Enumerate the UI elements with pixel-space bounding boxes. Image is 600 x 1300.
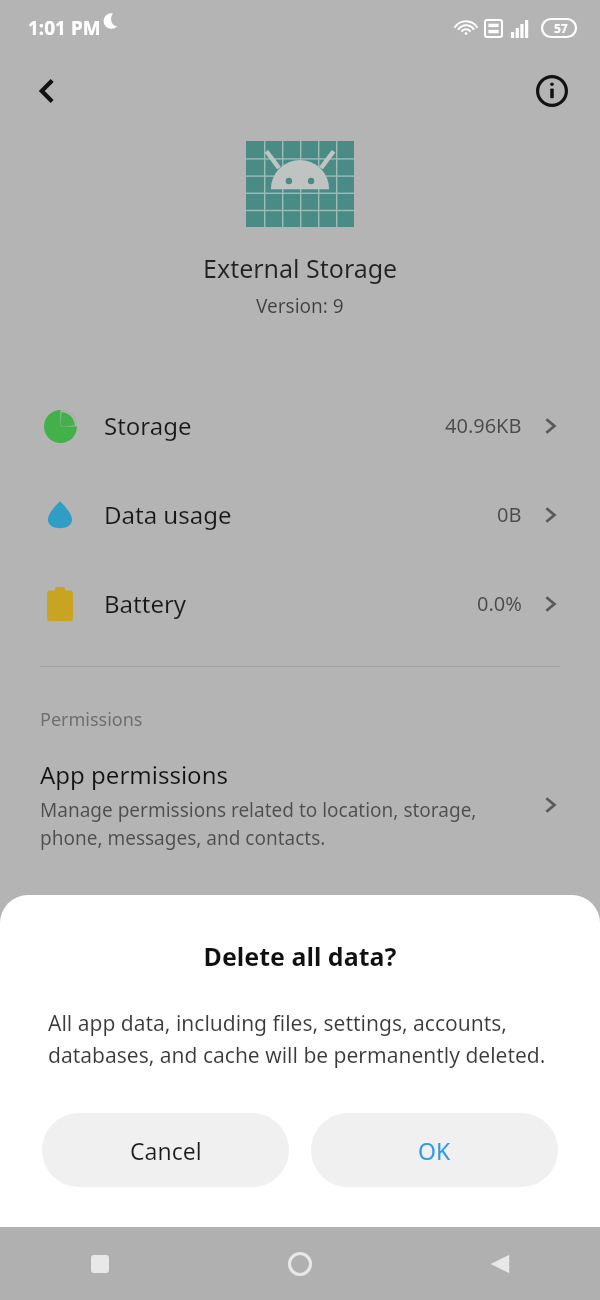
staticText: External Storage xyxy=(203,251,398,285)
staticText: 57 xyxy=(554,20,568,36)
staticText: Battery xyxy=(104,587,477,620)
button[interactable]: Battery xyxy=(0,559,600,648)
staticText: Data usage xyxy=(104,498,497,531)
staticText: All app data, including files, settings,… xyxy=(48,1009,552,1069)
button[interactable]: Cancel xyxy=(42,1113,289,1187)
button[interactable]: App permissions xyxy=(40,758,560,851)
button[interactable]: Data usage xyxy=(0,470,600,559)
staticText: 0.0% xyxy=(477,590,522,617)
button[interactable]: Back xyxy=(472,1236,528,1292)
button[interactable]: Home xyxy=(272,1236,328,1292)
staticText: 40.96KB xyxy=(445,412,522,439)
staticText: OK xyxy=(418,1135,451,1166)
button[interactable]: Back xyxy=(22,65,74,117)
staticText: 1:01 PM xyxy=(28,15,101,41)
button[interactable]: App info xyxy=(526,65,578,117)
staticText: Permissions xyxy=(40,707,143,732)
staticText: App permissions xyxy=(40,758,228,791)
staticText: Cancel xyxy=(130,1135,202,1166)
button[interactable]: OK xyxy=(311,1113,558,1187)
button[interactable]: Recent apps xyxy=(72,1236,128,1292)
staticText: Manage permissions related to location, … xyxy=(40,797,524,851)
staticText: Version: 9 xyxy=(256,293,344,319)
button[interactable]: Storage xyxy=(0,381,600,470)
staticText: 0B xyxy=(497,501,522,528)
staticText: Delete all data? xyxy=(24,939,576,973)
staticText: Storage xyxy=(104,409,445,442)
